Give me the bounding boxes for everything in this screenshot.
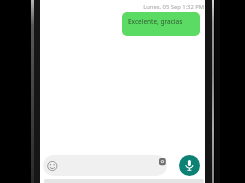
staticText: Lunes, 05 Sep 1:32 PM — [0, 3, 204, 11]
button[interactable] — [43, 155, 167, 176]
staticText: Excelente, gracias — [128, 17, 183, 26]
button[interactable]: Excelente, gracias — [122, 12, 200, 36]
button[interactable] — [179, 155, 200, 176]
